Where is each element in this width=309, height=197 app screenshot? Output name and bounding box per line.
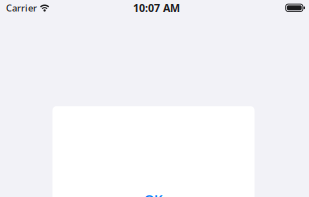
staticText: 10:07 AM — [133, 1, 180, 15]
staticText: Carrier — [6, 2, 37, 14]
button[interactable]: OK — [52, 184, 254, 197]
staticText: OK — [144, 190, 163, 197]
